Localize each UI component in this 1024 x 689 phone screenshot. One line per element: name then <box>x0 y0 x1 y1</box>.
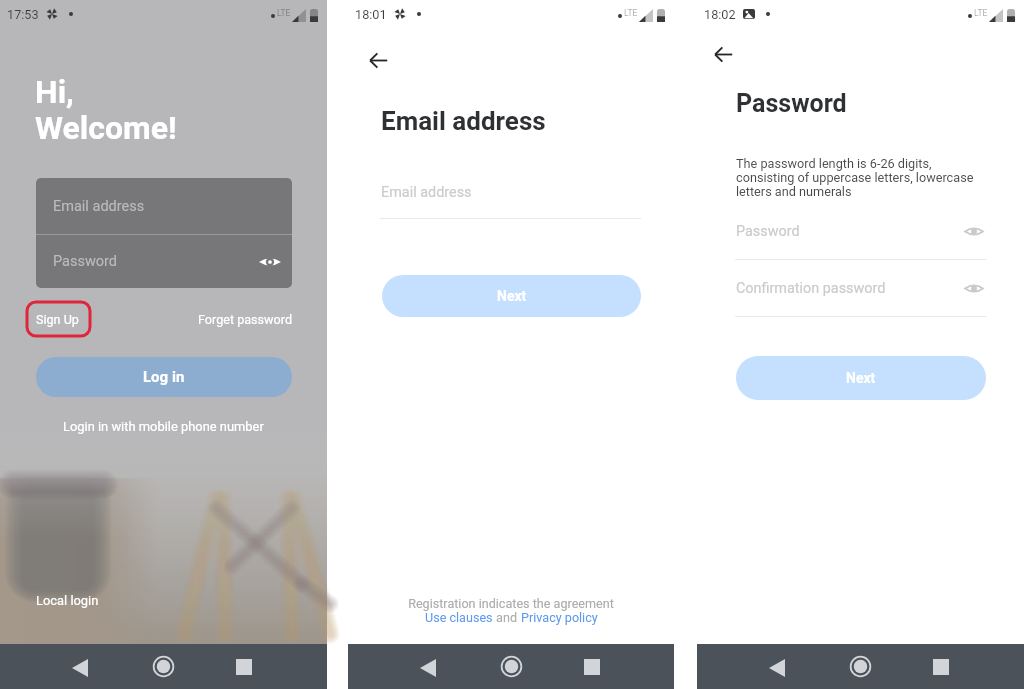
staticText: 18:02 <box>704 7 736 22</box>
staticText: Local login <box>36 593 99 608</box>
other: Back <box>420 659 436 677</box>
staticText: LTE <box>974 8 988 18</box>
staticText: Next <box>846 370 876 386</box>
staticText: Confirmation password <box>736 280 886 297</box>
staticText: 18:01 <box>355 7 387 22</box>
staticText: Sign Up <box>36 312 79 327</box>
button[interactable]: Log in <box>36 357 292 397</box>
button[interactable]: Password <box>736 214 986 248</box>
button[interactable]: Back <box>404 644 452 689</box>
staticText: Email address <box>53 198 145 215</box>
button[interactable]: Back <box>701 32 745 76</box>
staticText: LTE <box>277 8 291 18</box>
staticText: Email address <box>381 106 546 136</box>
button[interactable]: Login in with mobile phone number <box>63 419 264 434</box>
button[interactable]: Show password <box>962 276 986 300</box>
staticText: Password <box>53 253 118 270</box>
other: Home <box>153 656 174 677</box>
staticText: Registration indicates the agreement <box>408 596 614 611</box>
staticText: Log in <box>143 368 185 386</box>
staticText: Password <box>736 89 847 118</box>
button[interactable]: Local login <box>36 588 99 612</box>
staticText: Privacy policy <box>521 610 598 625</box>
button[interactable]: Use clauses <box>425 610 493 625</box>
other: Home <box>850 656 871 677</box>
staticText: Next <box>497 288 527 304</box>
other: Back <box>72 659 88 677</box>
staticText: Hi, Welcome! <box>35 73 177 147</box>
button[interactable]: Home <box>836 644 884 689</box>
staticText: 17:53 <box>7 7 39 22</box>
button[interactable]: Privacy policy <box>521 610 598 625</box>
button[interactable]: Forget password <box>198 312 292 327</box>
staticText: Use clauses <box>425 610 493 625</box>
button[interactable]: Password <box>36 235 292 288</box>
staticText: and <box>493 610 521 625</box>
button[interactable]: Recents <box>568 644 616 689</box>
button[interactable]: Back <box>356 38 400 82</box>
other: Back <box>769 659 785 677</box>
button[interactable]: Confirmation password <box>736 271 986 305</box>
staticText: Login in with mobile phone number <box>63 419 264 434</box>
button[interactable]: Show password <box>962 219 986 243</box>
button[interactable]: Sign Up <box>36 312 79 327</box>
staticText: LTE <box>624 8 638 18</box>
button[interactable]: Recents <box>220 644 268 689</box>
other: Home <box>501 656 522 677</box>
button[interactable]: Home <box>139 644 187 689</box>
button[interactable]: Show password <box>257 249 283 275</box>
button[interactable]: Email address <box>36 178 292 234</box>
button[interactable]: Next <box>736 356 986 400</box>
button[interactable]: Email address <box>381 178 641 218</box>
button[interactable]: Home <box>487 644 535 689</box>
button[interactable]: Back <box>56 644 104 689</box>
button[interactable]: Next <box>382 275 641 317</box>
button[interactable]: Recents <box>917 644 965 689</box>
staticText: The password length is 6-26 digits, cons… <box>736 156 974 199</box>
staticText: Email address <box>381 184 472 201</box>
staticText: Forget password <box>198 312 292 327</box>
staticText: Password <box>736 223 800 240</box>
button[interactable]: Back <box>753 644 801 689</box>
